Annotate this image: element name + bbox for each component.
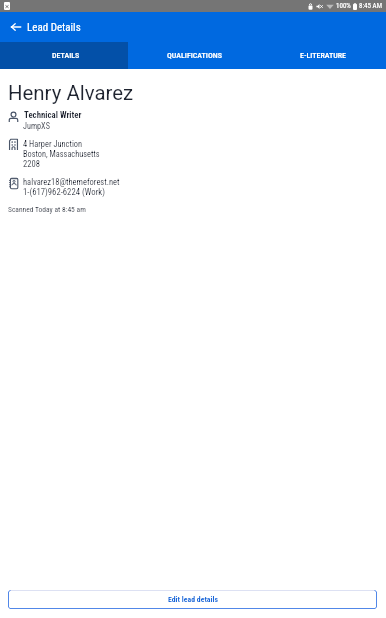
staticText: 4 Harper Junction <box>23 139 83 149</box>
staticText: Lead Details <box>27 21 81 34</box>
staticText: QUALIFICATIONS <box>167 51 222 60</box>
staticText: Technical Writer <box>24 110 82 120</box>
staticText: DETAILS <box>52 51 80 60</box>
staticText: JumpXS <box>23 121 50 131</box>
staticText: 2208 <box>23 159 40 169</box>
staticText: halvarez18@themeforest.net <box>23 177 120 187</box>
staticText: Henry Alvarez <box>8 81 134 105</box>
button[interactable]: QUALIFICATIONS <box>128 42 257 69</box>
staticText: 1-(617)962-6224 (Work) <box>23 187 105 197</box>
button[interactable]: E-LITERATURE <box>257 42 386 69</box>
staticText: E-LITERATURE <box>300 51 347 60</box>
staticText: 8:45 AM <box>359 2 382 10</box>
staticText: 100% <box>336 2 351 10</box>
staticText: Scanned Today at 8:45 am <box>8 205 86 214</box>
button[interactable]: Back <box>5 16 27 38</box>
staticText: Edit lead details <box>168 595 218 604</box>
button[interactable]: Edit lead details <box>8 590 377 609</box>
staticText: Boston, Massachusetts <box>23 149 100 159</box>
button[interactable]: DETAILS <box>0 42 128 69</box>
